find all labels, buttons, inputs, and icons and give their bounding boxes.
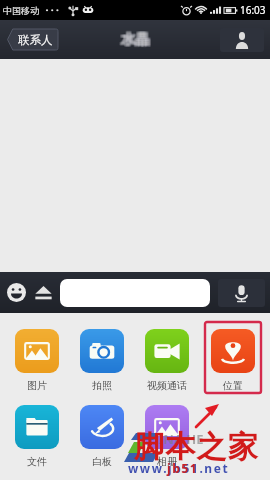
staticText: 水晶 [120, 30, 148, 48]
staticText: 中国移动 [3, 5, 39, 16]
staticText: 水晶 [121, 32, 149, 50]
staticText: 水晶 [121, 30, 149, 48]
staticText: 图片 [27, 379, 47, 392]
staticText: 拍照 [92, 379, 112, 392]
button[interactable]: 拍照 [69, 329, 134, 392]
staticText: 白板 [92, 455, 112, 468]
button[interactable]: 位置 [200, 329, 266, 392]
staticText: 水晶 [120, 31, 148, 49]
staticText: 脚本之家 [134, 428, 259, 466]
staticText: 水晶 [123, 32, 151, 50]
button[interactable]: Contact profile [220, 28, 264, 52]
staticText: 水晶 [123, 30, 151, 48]
staticText: 16:03 [240, 3, 266, 17]
staticText: 水晶 [119, 30, 147, 48]
button[interactable]: 视频通话 [134, 329, 200, 392]
staticText: CHINA HE [140, 430, 204, 448]
button[interactable]: 图片 [4, 329, 69, 392]
staticText: 水晶 [122, 32, 150, 50]
button[interactable]: Voice message [218, 279, 265, 307]
button[interactable] [60, 279, 210, 307]
button[interactable]: 文件 [4, 405, 69, 468]
staticText: 位置 [223, 379, 243, 392]
button[interactable]: Emoji [3, 279, 30, 306]
staticText: 水晶 [122, 30, 150, 48]
button[interactable]: 白板 [69, 405, 134, 468]
staticText: 文件 [27, 455, 47, 468]
button[interactable]: More options [30, 279, 57, 306]
staticText: 联系人 [18, 33, 53, 47]
staticText: 水晶 [121, 31, 149, 49]
staticText: 水晶 [120, 32, 148, 50]
staticText: 水晶 [122, 31, 150, 49]
staticText: jb51 [167, 460, 199, 476]
staticText: 水晶 [123, 31, 151, 49]
staticText: 视频通话 [147, 379, 187, 392]
button[interactable]: 相册 [134, 405, 200, 468]
button[interactable]: 联系人 [6, 29, 58, 50]
staticText: 水晶 [119, 32, 147, 50]
staticText: 水晶 [119, 31, 147, 49]
staticText: www.jb51.net [128, 460, 230, 476]
staticText: 相册 [157, 455, 177, 468]
